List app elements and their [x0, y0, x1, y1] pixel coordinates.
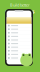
button[interactable] [7, 38, 31, 42]
button[interactable] [7, 49, 31, 53]
button[interactable] [7, 24, 31, 27]
staticText: daily habits [5, 8, 35, 15]
button[interactable] [7, 27, 31, 31]
button[interactable] [7, 35, 31, 38]
button[interactable] [7, 45, 31, 49]
button[interactable] [7, 31, 31, 35]
staticText: Build better [10, 2, 30, 7]
button[interactable] [15, 10, 23, 12]
button[interactable] [7, 42, 31, 45]
button[interactable] [7, 53, 31, 56]
button[interactable] [7, 56, 31, 60]
